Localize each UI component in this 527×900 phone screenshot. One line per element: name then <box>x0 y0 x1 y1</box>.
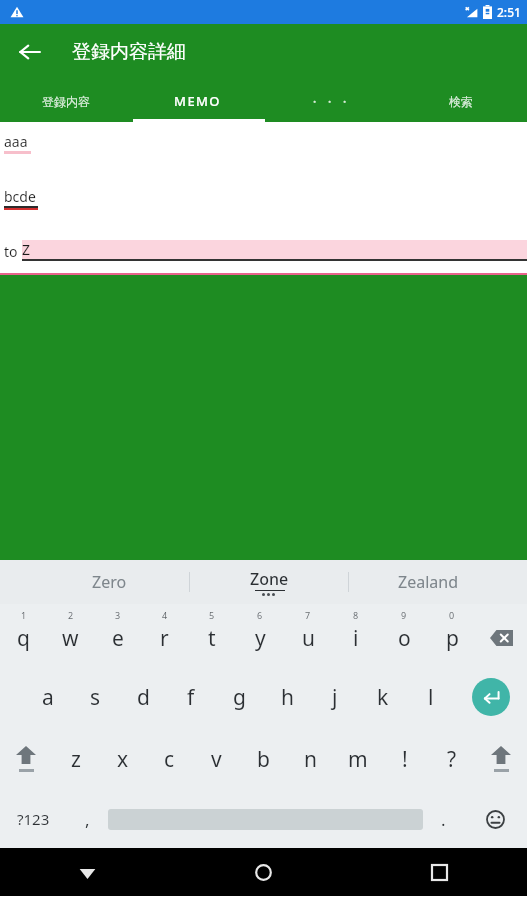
button[interactable]: m <box>334 728 381 790</box>
button[interactable]: 6 <box>236 604 284 666</box>
button[interactable]: 3 <box>94 604 141 666</box>
button[interactable]: d <box>119 666 167 728</box>
staticText: l <box>428 683 434 712</box>
button[interactable]: Back <box>6 28 54 76</box>
staticText: Zero <box>92 571 127 593</box>
button[interactable]: ?123 <box>0 790 67 848</box>
staticText: u <box>302 624 315 653</box>
button[interactable]: s <box>71 666 119 728</box>
button[interactable]: z <box>52 728 99 790</box>
button[interactable]: b <box>240 728 287 790</box>
staticText: Zone <box>250 568 289 590</box>
button[interactable]: 7 <box>284 604 332 666</box>
staticText: aaa <box>4 132 28 151</box>
button[interactable]: Back <box>0 848 175 896</box>
staticText: p <box>446 624 459 653</box>
button[interactable]: 4 <box>141 604 188 666</box>
button[interactable]: Zone <box>190 560 348 604</box>
staticText: ! <box>402 745 408 774</box>
staticText: 8 <box>353 609 359 621</box>
button[interactable]: g <box>215 666 263 728</box>
staticText: . <box>441 808 446 831</box>
button[interactable]: x <box>99 728 146 790</box>
button[interactable]: Enter <box>455 666 527 728</box>
staticText: 0 <box>449 609 455 621</box>
button[interactable]: Backspace <box>476 604 527 666</box>
button[interactable]: 検索 <box>395 80 527 122</box>
button[interactable]: 1 <box>0 604 47 666</box>
staticText: m <box>348 745 368 774</box>
staticText: , <box>85 808 90 831</box>
staticText: 4 <box>162 609 168 621</box>
button[interactable]: Recents <box>351 848 527 896</box>
staticText: 登録内容 <box>42 94 90 109</box>
staticText: Z <box>22 240 31 259</box>
button[interactable]: 0 <box>428 604 476 666</box>
button[interactable]: 2 <box>47 604 94 666</box>
staticText: g <box>233 683 246 712</box>
staticText: c <box>164 745 175 774</box>
button[interactable]: a <box>24 666 71 728</box>
staticText: ?123 <box>17 809 50 829</box>
staticText: h <box>281 683 294 712</box>
staticText: b <box>257 745 270 774</box>
staticText: k <box>377 683 389 712</box>
button[interactable]: Shift <box>475 728 527 790</box>
button[interactable]: MEMO <box>131 80 263 122</box>
button[interactable]: . <box>423 790 464 848</box>
staticText: ・ ・ ・ <box>308 93 351 109</box>
button[interactable]: k <box>359 666 407 728</box>
staticText: 3 <box>115 609 121 621</box>
staticText: 2 <box>68 609 74 621</box>
button[interactable]: Space <box>108 790 423 848</box>
staticText: y <box>255 624 266 653</box>
button[interactable]: Shift <box>0 728 52 790</box>
staticText: 1 <box>21 609 27 621</box>
staticText: q <box>17 624 30 653</box>
button[interactable]: v <box>193 728 240 790</box>
button[interactable]: , <box>67 790 108 848</box>
staticText: j <box>332 683 338 712</box>
button[interactable]: c <box>146 728 193 790</box>
staticText: i <box>353 624 359 653</box>
staticText: 登録内容詳細 <box>72 40 186 64</box>
staticText: to <box>4 242 22 261</box>
staticText: 5 <box>209 609 215 621</box>
button[interactable]: Zero <box>30 560 189 604</box>
staticText: MEMO <box>174 92 221 110</box>
staticText: d <box>137 683 150 712</box>
button[interactable]: j <box>311 666 359 728</box>
button[interactable]: 5 <box>188 604 236 666</box>
staticText: 6 <box>257 609 263 621</box>
button[interactable]: 9 <box>380 604 428 666</box>
staticText: 9 <box>401 609 407 621</box>
staticText: w <box>62 624 79 653</box>
staticText: t <box>208 624 216 653</box>
staticText: r <box>160 624 169 653</box>
staticText: bcde <box>4 187 36 206</box>
button[interactable]: 8 <box>332 604 380 666</box>
staticText: 2:51 <box>497 4 521 20</box>
button[interactable]: l <box>407 666 455 728</box>
button[interactable]: f <box>167 666 215 728</box>
button[interactable]: ・ ・ ・ <box>263 80 395 122</box>
staticText: e <box>112 624 124 653</box>
button[interactable]: Home <box>175 848 351 896</box>
button[interactable]: Emoji <box>464 790 527 848</box>
staticText: x <box>117 745 129 774</box>
staticText: 7 <box>305 609 311 621</box>
button[interactable]: h <box>263 666 311 728</box>
staticText: s <box>90 683 101 712</box>
button[interactable]: n <box>287 728 334 790</box>
button[interactable]: 登録内容 <box>0 80 131 122</box>
button[interactable]: Zealand <box>349 560 507 604</box>
staticText: o <box>398 624 411 653</box>
staticText: n <box>304 745 317 774</box>
staticText: 検索 <box>449 94 473 109</box>
staticText: v <box>211 745 222 774</box>
button[interactable]: ! <box>381 728 428 790</box>
staticText: f <box>187 683 195 712</box>
button[interactable]: ? <box>428 728 475 790</box>
staticText: a <box>42 683 54 712</box>
staticText: z <box>71 745 81 774</box>
